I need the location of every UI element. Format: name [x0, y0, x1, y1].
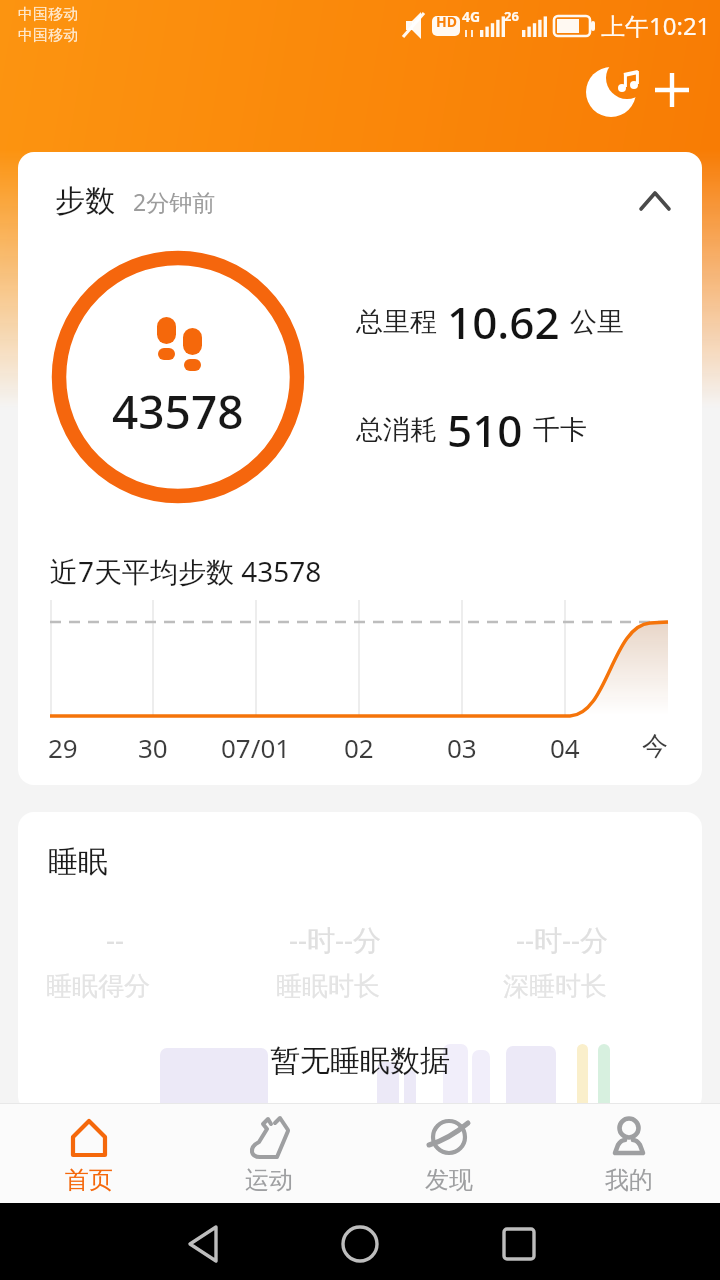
staticText: 30	[138, 730, 168, 765]
button[interactable]	[639, 188, 675, 214]
button[interactable]: 发现	[387, 1107, 511, 1199]
staticText: 发现	[425, 1165, 473, 1195]
staticText: 43578	[112, 380, 244, 443]
staticText: 公里	[570, 305, 624, 339]
staticText: --时--分	[289, 920, 382, 958]
staticText: 总消耗	[356, 413, 437, 447]
staticText: 我的	[605, 1165, 653, 1195]
staticText: 深睡时长	[503, 970, 607, 1003]
staticText: 10.62	[447, 292, 560, 352]
button[interactable]	[317, 1204, 403, 1279]
button[interactable]: 睡眠	[18, 812, 702, 1112]
staticText: 中国移动	[18, 26, 78, 45]
button[interactable]: 首页	[27, 1107, 151, 1199]
staticText: 首页	[65, 1165, 113, 1195]
staticText: 03	[447, 730, 477, 765]
button[interactable]	[586, 62, 642, 118]
button[interactable]	[476, 1204, 562, 1279]
staticText: --时--分	[516, 920, 609, 958]
button[interactable]	[160, 1204, 246, 1279]
staticText: 上午10:21	[601, 9, 711, 42]
staticText: 运动	[245, 1165, 293, 1195]
staticText: --	[106, 920, 125, 958]
button[interactable]: 步数	[18, 152, 702, 785]
staticText: 中国移动	[18, 5, 78, 24]
staticText: 千卡	[533, 413, 587, 447]
staticText: 02	[344, 730, 374, 765]
staticText: 近7天平均步数 43578	[50, 552, 322, 590]
staticText: 2分钟前	[133, 186, 216, 217]
button[interactable]: 运动	[207, 1107, 331, 1199]
staticText: 暂无睡眠数据	[270, 1042, 450, 1080]
staticText: HD	[436, 12, 457, 31]
staticText: 今	[642, 730, 668, 763]
button[interactable]: 我的	[567, 1107, 691, 1199]
staticText: 29	[48, 730, 78, 765]
button[interactable]	[648, 66, 696, 114]
staticText: 总里程	[356, 305, 437, 339]
staticText: 步数	[55, 182, 115, 220]
staticText: 睡眠得分	[46, 970, 150, 1003]
staticText: 睡眠	[48, 843, 108, 881]
staticText: 510	[447, 400, 523, 460]
staticText: 26	[504, 7, 519, 25]
staticText: 睡眠时长	[276, 970, 380, 1003]
staticText: 07/01	[221, 730, 291, 765]
staticText: 04	[550, 730, 580, 765]
staticText: 4G	[462, 7, 481, 26]
